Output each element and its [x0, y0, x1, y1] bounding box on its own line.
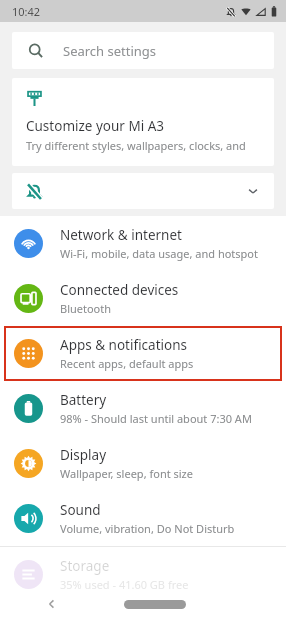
staticText: Bluetooth: [60, 301, 112, 316]
staticText: Customize your Mi A3: [26, 117, 165, 135]
staticText: Volume, vibration, Do Not Disturb: [60, 521, 235, 536]
staticText: Try different styles, wallpapers, clocks…: [26, 138, 264, 153]
staticText: Wi-Fi, mobile, data usage, and hotspot: [60, 246, 258, 261]
other: Notifications off: [26, 183, 43, 200]
staticText: Network & internet: [60, 226, 182, 244]
button[interactable]: Apps & notifications: [0, 326, 286, 381]
staticText: Sound: [60, 501, 101, 519]
other: Expand: [246, 184, 260, 198]
button[interactable]: Sound: [0, 491, 286, 546]
staticText: Apps & notifications: [60, 336, 187, 354]
button[interactable]: Display: [0, 436, 286, 491]
button[interactable]: Back: [46, 598, 58, 610]
button[interactable]: Home: [124, 600, 186, 609]
staticText: Search settings: [63, 42, 157, 60]
button[interactable]: Customize your Mi A3: [12, 78, 274, 166]
button[interactable]: Search settings: [12, 32, 274, 69]
button[interactable]: Connected devices: [0, 271, 286, 326]
button[interactable]: Battery: [0, 381, 286, 436]
staticText: Connected devices: [60, 281, 179, 299]
staticText: 35% used - 41.60 GB free: [60, 577, 189, 592]
button[interactable]: Network & internet: [0, 216, 286, 271]
staticText: 10:42: [12, 4, 41, 19]
staticText: Recent apps, default apps: [60, 356, 194, 371]
button[interactable]: Notifications off: [12, 173, 274, 209]
staticText: Storage: [60, 557, 110, 575]
staticText: Wallpaper, sleep, font size: [60, 466, 193, 481]
staticText: 98% - Should last until about 7:30 AM: [60, 411, 252, 426]
staticText: Battery: [60, 391, 107, 409]
button[interactable]: Storage: [0, 547, 286, 602]
staticText: Display: [60, 446, 107, 464]
